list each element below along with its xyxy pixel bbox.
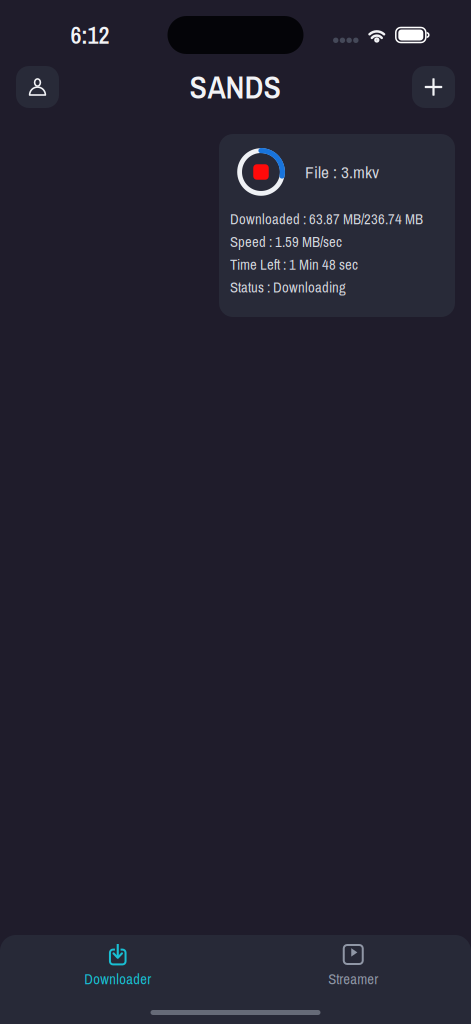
button[interactable]: Downloader	[0, 935, 235, 989]
staticText: Downloader	[84, 969, 151, 989]
button[interactable]: Add download	[412, 66, 455, 108]
staticText: 6:12	[70, 19, 109, 51]
button[interactable]: Streamer	[235, 935, 471, 989]
staticText: File : 3.mkv	[305, 160, 379, 184]
staticText: Streamer	[328, 969, 378, 989]
staticText: Speed : 1.59 MB/sec	[230, 232, 342, 252]
staticText: Status : Downloading	[230, 277, 346, 297]
staticText: SANDS	[189, 65, 281, 108]
button[interactable]: Account	[16, 66, 59, 108]
staticText: Time Left : 1 Min 48 sec	[230, 254, 358, 274]
button[interactable]: Stop download	[237, 148, 285, 196]
staticText: Downloaded : 63.87 MB/236.74 MB	[230, 209, 423, 229]
